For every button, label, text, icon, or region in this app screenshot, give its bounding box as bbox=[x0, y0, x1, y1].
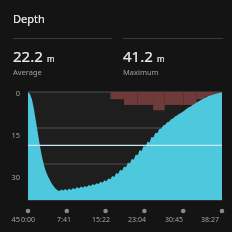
button[interactable]: 41.2 bbox=[123, 38, 223, 77]
staticText: 30 bbox=[0, 172, 20, 182]
staticText: Depth bbox=[13, 11, 45, 26]
staticText: 15 bbox=[0, 130, 20, 140]
button[interactable]: Depth bbox=[0, 10, 232, 27]
staticText: 0:00 bbox=[14, 215, 42, 225]
button[interactable]: Dive depth profile chart bbox=[0, 88, 232, 232]
staticText: 38:27 bbox=[196, 215, 224, 225]
staticText: 45 bbox=[0, 214, 20, 224]
staticText: Average bbox=[13, 67, 42, 77]
staticText: 30:45 bbox=[160, 215, 188, 225]
staticText: 0 bbox=[0, 88, 20, 98]
staticText: 41.2 bbox=[123, 46, 153, 66]
button[interactable]: 22.2 bbox=[13, 38, 112, 77]
staticText: 23:04 bbox=[123, 215, 151, 225]
staticText: m bbox=[47, 53, 55, 64]
staticText: 15:22 bbox=[87, 215, 115, 225]
staticText: 22.2 bbox=[13, 46, 43, 66]
staticText: m bbox=[157, 53, 165, 64]
staticText: 7:41 bbox=[50, 215, 78, 225]
staticText: Maximum bbox=[123, 67, 159, 77]
